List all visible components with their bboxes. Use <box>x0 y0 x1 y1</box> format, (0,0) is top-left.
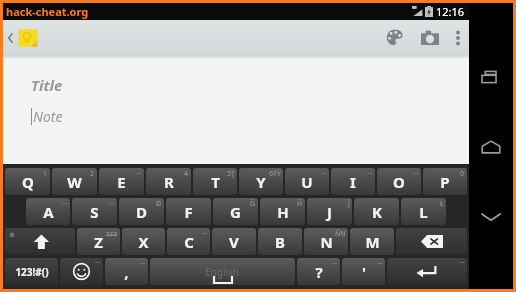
button[interactable]: del <box>396 228 467 255</box>
button[interactable]: I <box>331 168 375 195</box>
button[interactable]: Recents <box>469 55 513 99</box>
staticText: X <box>138 232 149 252</box>
staticText: ··· <box>202 229 208 239</box>
button[interactable]: E <box>99 168 144 195</box>
staticText: 5Ţ <box>227 169 235 179</box>
button[interactable]: A <box>26 198 70 225</box>
button[interactable]: O <box>377 168 421 195</box>
button[interactable]: H <box>260 198 305 225</box>
staticText: ' <box>362 262 366 282</box>
staticText: S <box>90 202 99 222</box>
button[interactable]: Y <box>239 168 283 195</box>
button[interactable]: N <box>304 228 348 255</box>
button[interactable]: T <box>193 168 237 195</box>
button[interactable]: More options <box>448 24 469 52</box>
button[interactable]: K <box>354 198 399 225</box>
staticText: hack-cheat.org <box>6 4 89 19</box>
staticText: ··· <box>140 259 146 269</box>
staticText: ʑʑʑ <box>106 229 118 239</box>
button[interactable]: S <box>72 198 117 225</box>
staticText: H <box>277 202 289 222</box>
staticText: ··· <box>62 199 68 209</box>
staticText: 123!#() <box>15 265 49 279</box>
button[interactable]: L <box>401 198 446 225</box>
button[interactable]: V <box>212 228 256 255</box>
staticText: Ĵ <box>348 199 350 209</box>
button[interactable]: Home <box>469 125 513 169</box>
staticText: ··· <box>413 169 419 179</box>
button[interactable]: Camera <box>412 24 448 51</box>
staticText: L <box>419 202 428 222</box>
staticText: Z <box>94 232 103 252</box>
button[interactable]: Z <box>77 228 120 255</box>
button[interactable]: P <box>423 168 467 195</box>
staticText: 12:16 <box>436 4 465 19</box>
staticText: A <box>43 202 54 222</box>
button[interactable]: 123!#() <box>5 258 58 285</box>
button[interactable]: enter <box>387 258 467 285</box>
button[interactable]: Color <box>377 23 412 52</box>
button[interactable]: space <box>150 258 295 285</box>
staticText: F <box>184 202 193 222</box>
staticText: V <box>229 232 239 252</box>
staticText: ··· <box>459 258 465 268</box>
button[interactable]: F <box>166 198 211 225</box>
button[interactable]: U <box>285 168 329 195</box>
staticText: Ł <box>440 199 444 209</box>
button[interactable]: R <box>146 168 191 195</box>
button[interactable]: emoji <box>60 258 103 285</box>
staticText: 6ÝŸ <box>269 169 281 179</box>
button[interactable]: X <box>122 228 165 255</box>
button[interactable]: ' <box>342 258 385 285</box>
staticText: I <box>350 172 356 192</box>
staticText: W <box>67 172 82 192</box>
button[interactable]: Q <box>5 168 50 195</box>
button[interactable]: Navigate up <box>3 23 45 53</box>
button[interactable]: Hide keyboard <box>469 195 513 239</box>
button[interactable]: shift <box>5 228 75 255</box>
staticText: ··· <box>136 169 142 179</box>
button[interactable]: C <box>167 228 210 255</box>
staticText: D <box>136 202 147 222</box>
staticText: 0 <box>460 169 465 179</box>
staticText: 2 <box>90 169 95 179</box>
staticText: K <box>372 202 382 222</box>
staticText: ÑŅ <box>335 229 346 239</box>
staticText: ··· <box>377 259 383 269</box>
staticText: ··· <box>332 259 338 269</box>
staticText: C <box>184 232 194 252</box>
staticText: T <box>211 172 220 192</box>
staticText: 4 <box>184 169 189 179</box>
staticText: Title <box>31 75 63 95</box>
button[interactable]: B <box>258 228 302 255</box>
staticText: Q <box>22 172 34 192</box>
button[interactable]: J <box>307 198 352 225</box>
staticText: O <box>393 172 405 192</box>
button[interactable]: ? <box>297 258 340 285</box>
staticText: R <box>164 172 174 192</box>
staticText: Ĥ <box>297 199 303 209</box>
button[interactable]: , <box>105 258 148 285</box>
button[interactable]: D <box>119 198 164 225</box>
staticText: N <box>320 232 333 252</box>
staticText: Ğ <box>250 199 256 209</box>
staticText: J <box>327 202 332 222</box>
staticText: ··· <box>109 199 115 209</box>
staticText: ··· <box>367 169 373 179</box>
button[interactable]: G <box>213 198 258 225</box>
staticText: M <box>365 232 380 252</box>
button[interactable]: Title <box>3 59 469 164</box>
staticText: ? <box>315 262 323 282</box>
staticText: B <box>275 232 285 252</box>
staticText: Y <box>256 172 266 192</box>
staticText: 1 <box>43 169 48 179</box>
staticText: G <box>230 202 241 222</box>
staticText: English <box>205 265 240 279</box>
staticText: ··· <box>95 258 101 268</box>
staticText: Note <box>33 107 63 126</box>
button[interactable]: W <box>52 168 97 195</box>
staticText: ··· <box>321 169 327 179</box>
staticText: U <box>301 172 313 192</box>
staticText: P <box>440 172 450 192</box>
button[interactable]: M <box>350 228 394 255</box>
